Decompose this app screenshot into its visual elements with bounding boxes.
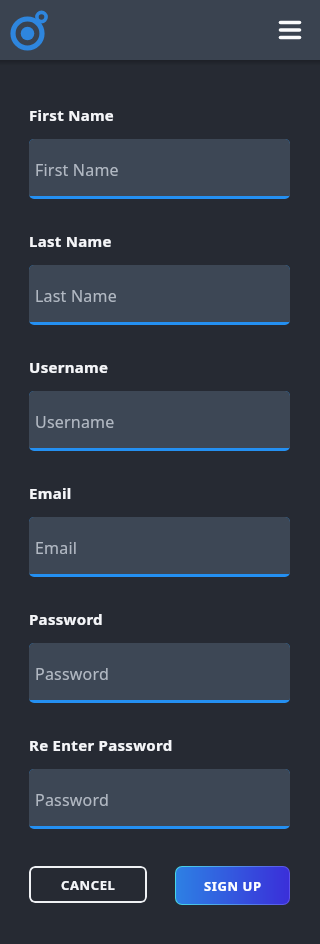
staticText: Last Name bbox=[35, 285, 117, 307]
button[interactable]: Password bbox=[29, 643, 290, 703]
staticText: Last Name bbox=[29, 231, 112, 251]
staticText: Password bbox=[35, 789, 109, 811]
staticText: Email bbox=[35, 537, 78, 559]
staticText: SIGN UP bbox=[204, 877, 262, 895]
staticText: Username bbox=[29, 357, 109, 377]
staticText: First Name bbox=[29, 105, 115, 125]
button[interactable] bbox=[275, 15, 305, 45]
staticText: Password bbox=[29, 609, 103, 629]
button[interactable]: SIGN UP bbox=[175, 866, 290, 905]
button[interactable]: Email bbox=[29, 517, 290, 577]
button[interactable]: First Name bbox=[29, 139, 290, 199]
button[interactable]: Password bbox=[29, 769, 290, 829]
staticText: Re Enter Password bbox=[29, 735, 173, 755]
staticText: Password bbox=[35, 663, 109, 685]
button[interactable]: Username bbox=[29, 391, 290, 451]
staticText: Username bbox=[35, 411, 115, 433]
staticText: CANCEL bbox=[61, 876, 116, 894]
staticText: Email bbox=[29, 483, 72, 503]
staticText: First Name bbox=[35, 159, 119, 181]
button[interactable]: Last Name bbox=[29, 265, 290, 325]
button[interactable]: CANCEL bbox=[29, 866, 147, 903]
